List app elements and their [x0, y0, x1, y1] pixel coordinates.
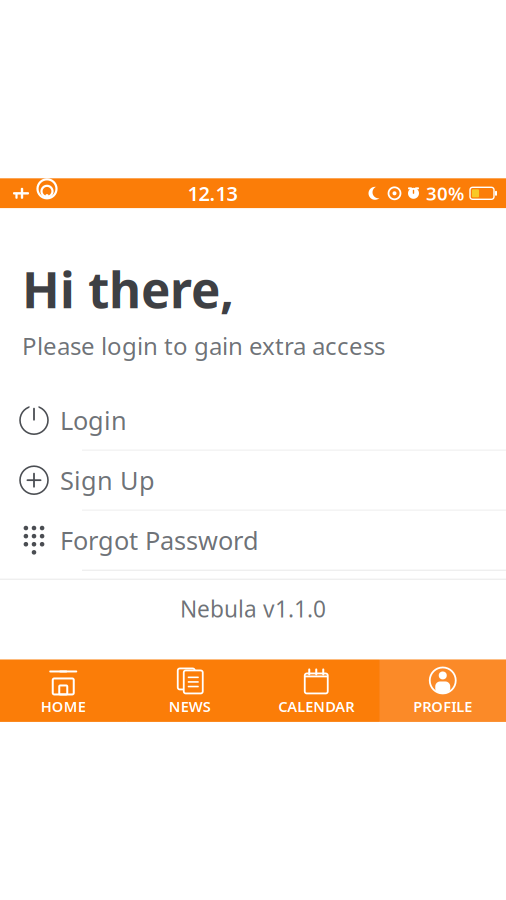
- staticText: HOME: [41, 696, 86, 716]
- button[interactable]: Sign Up: [0, 451, 506, 511]
- staticText: Forgot Password: [60, 523, 259, 557]
- button[interactable]: Login: [0, 391, 506, 451]
- button[interactable]: HOME: [0, 660, 126, 722]
- staticText: 30%: [426, 181, 464, 206]
- staticText: Please login to gain extra access: [22, 330, 385, 362]
- staticText: Login: [60, 403, 127, 437]
- staticText: Nebula v1.1.0: [180, 594, 326, 624]
- staticText: PROFILE: [413, 696, 472, 716]
- staticText: Hi there,: [22, 256, 234, 322]
- staticText: CALENDAR: [278, 696, 354, 716]
- button[interactable]: Forgot Password: [0, 511, 506, 571]
- button[interactable]: CALENDAR: [253, 660, 379, 722]
- button[interactable]: PROFILE: [379, 660, 506, 722]
- staticText: 12.13: [187, 180, 237, 207]
- staticText: Sign Up: [60, 463, 155, 497]
- staticText: NEWS: [169, 696, 211, 716]
- button[interactable]: NEWS: [126, 660, 253, 722]
